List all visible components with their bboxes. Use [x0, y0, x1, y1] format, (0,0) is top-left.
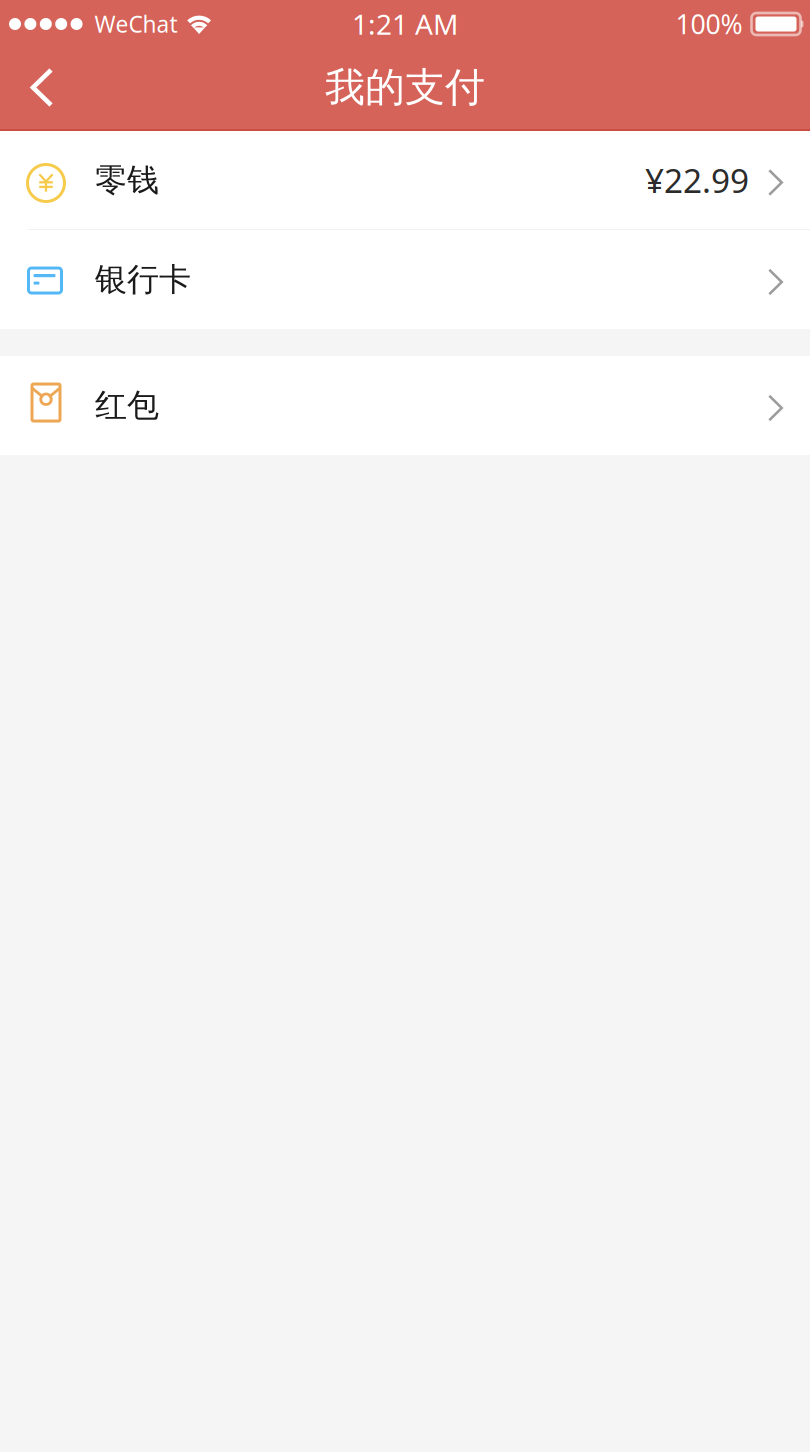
button[interactable]: 银行卡: [0, 230, 810, 329]
button[interactable]: 红包: [0, 356, 810, 455]
staticText: ¥22.99: [645, 158, 749, 202]
staticText: 1:21 AM: [352, 5, 458, 43]
staticText: 银行卡: [95, 260, 191, 299]
staticText: 100%: [675, 6, 742, 42]
staticText: 红包: [95, 386, 159, 425]
staticText: 我的支付: [325, 63, 485, 112]
button[interactable]: Back: [0, 52, 84, 126]
staticText: 零钱: [95, 160, 159, 200]
button[interactable]: 零钱: [0, 131, 810, 229]
staticText: WeChat: [95, 9, 178, 39]
